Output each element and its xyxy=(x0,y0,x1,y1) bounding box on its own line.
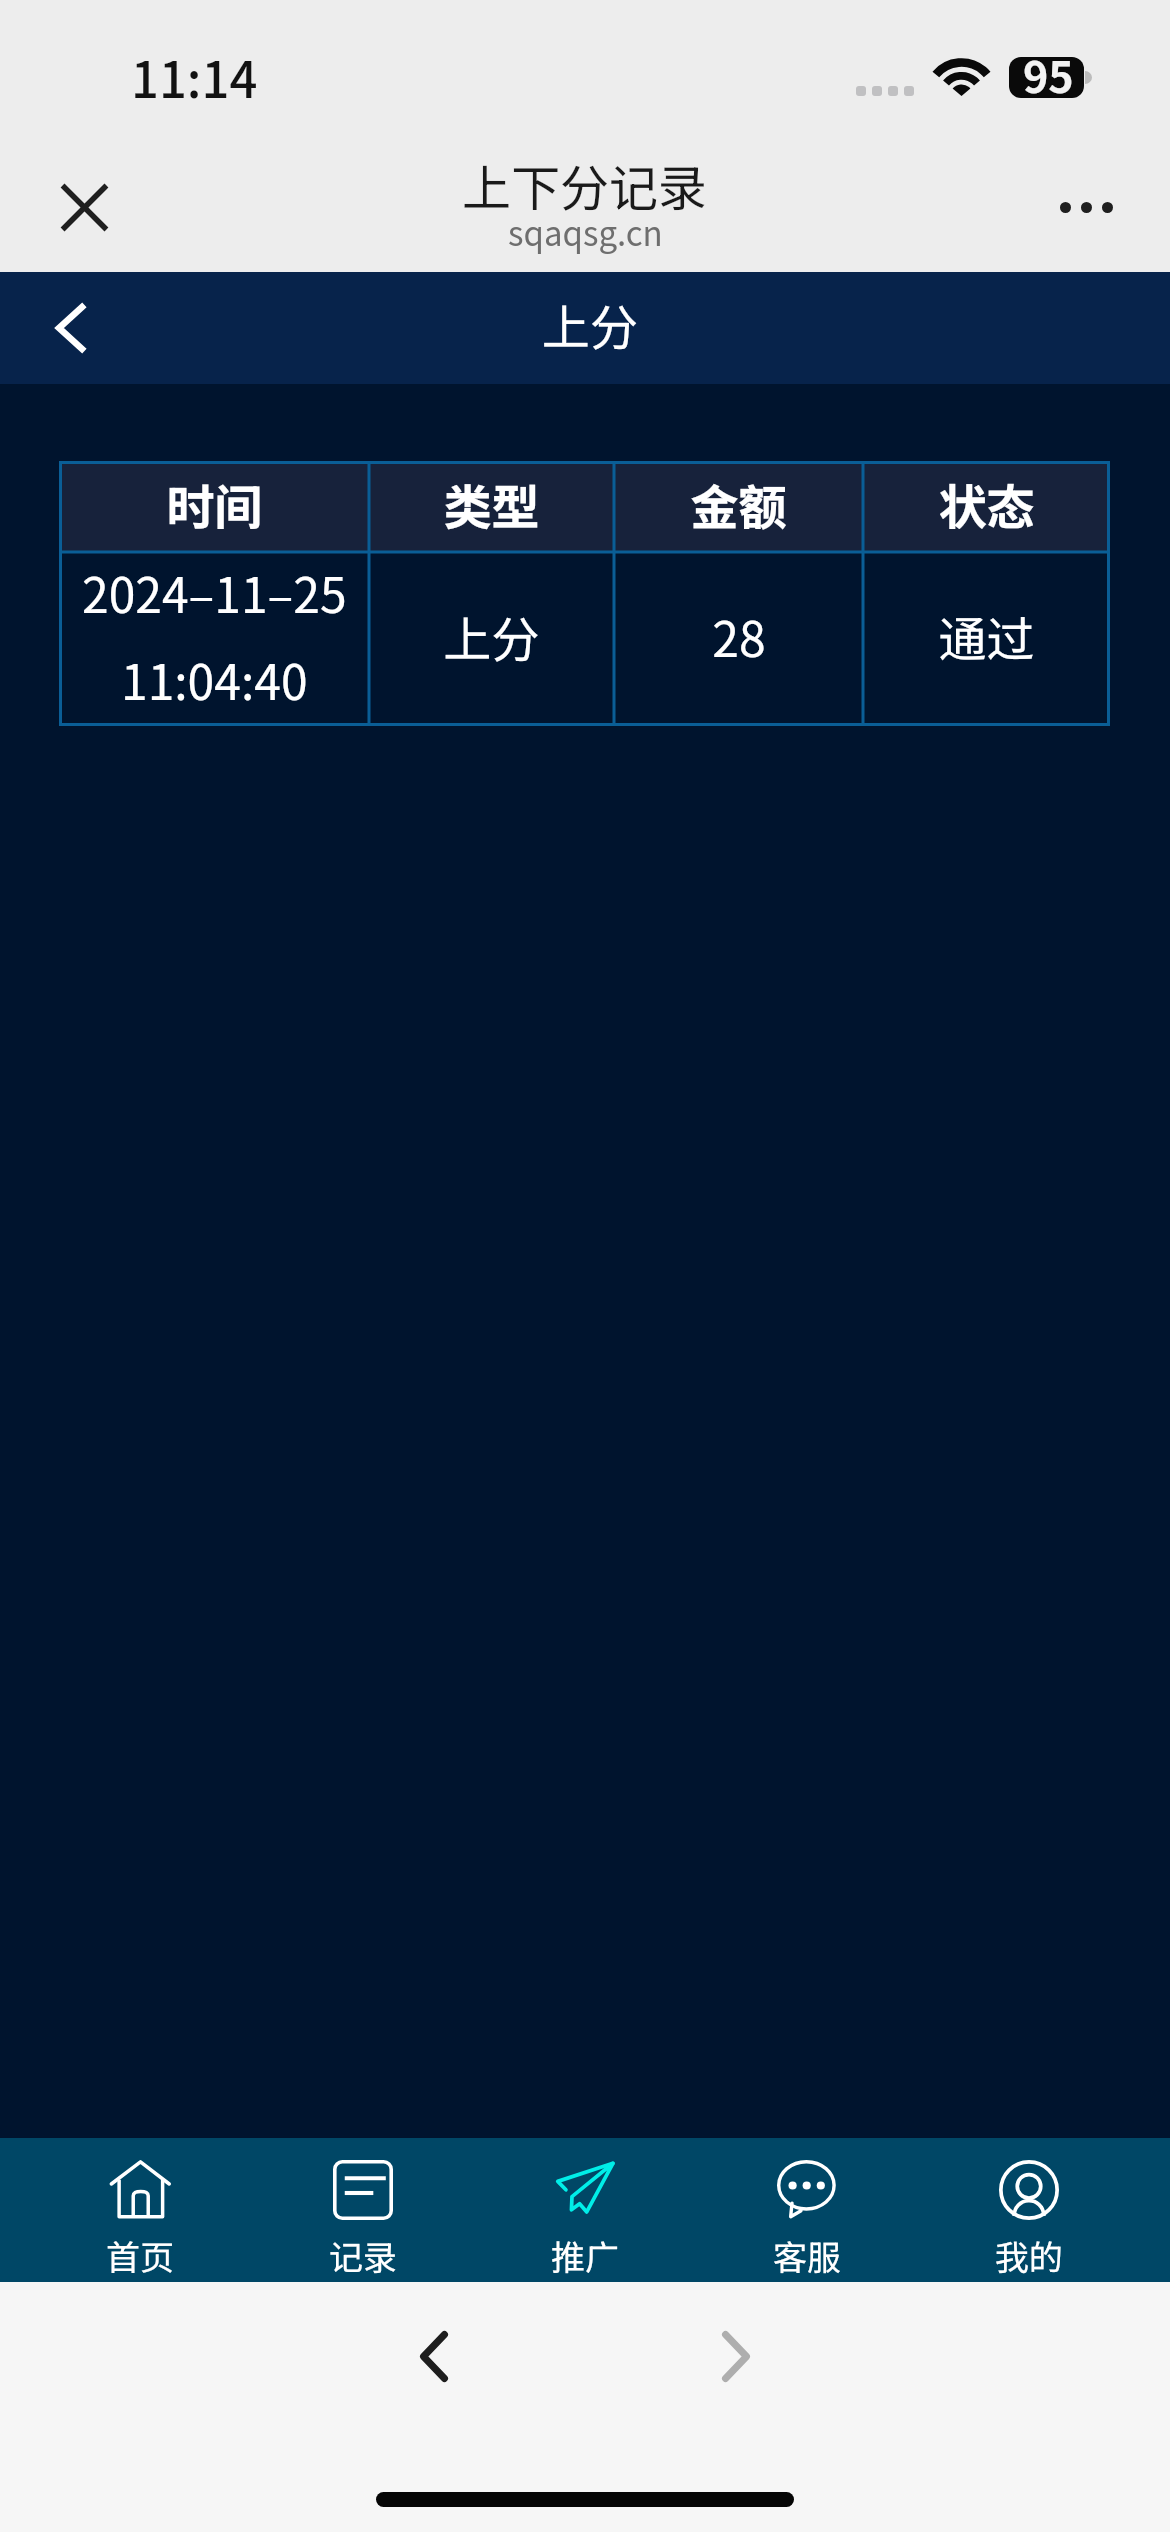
button[interactable]: 记录 xyxy=(251,2138,474,2282)
staticText: 状态 xyxy=(938,469,1035,539)
staticText: 类型 xyxy=(443,469,540,539)
staticText: 28 xyxy=(712,601,766,671)
button[interactable]: 推广 xyxy=(474,2138,696,2282)
button[interactable]: 我的 xyxy=(918,2138,1140,2282)
button[interactable]: More options xyxy=(1044,165,1128,249)
button[interactable]: 首页 xyxy=(28,2138,251,2282)
button[interactable]: Close xyxy=(42,165,126,249)
staticText: 推广 xyxy=(551,2231,619,2280)
staticText: 通过 xyxy=(938,601,1035,671)
staticText: 11:14 xyxy=(131,41,258,112)
staticText: 95 xyxy=(1023,43,1074,105)
staticText: sqaqsg.cn xyxy=(508,208,663,256)
staticText: 上下分记录 xyxy=(462,149,708,220)
staticText: 11:04:40 xyxy=(121,644,308,714)
staticText: 2024–11–25 xyxy=(82,557,347,627)
button[interactable]: 客服 xyxy=(696,2138,918,2282)
staticText: 记录 xyxy=(329,2231,397,2280)
staticText: 首页 xyxy=(106,2231,174,2280)
staticText: 上分 xyxy=(542,289,639,359)
staticText: 金额 xyxy=(690,469,787,539)
button[interactable]: Navigate forward xyxy=(691,2311,781,2401)
staticText: 时间 xyxy=(166,469,263,539)
staticText: 上分 xyxy=(443,601,540,671)
staticText: 客服 xyxy=(773,2231,841,2280)
staticText: 我的 xyxy=(995,2231,1063,2280)
button[interactable]: Navigate back xyxy=(389,2311,479,2401)
button[interactable]: Back xyxy=(24,272,116,384)
